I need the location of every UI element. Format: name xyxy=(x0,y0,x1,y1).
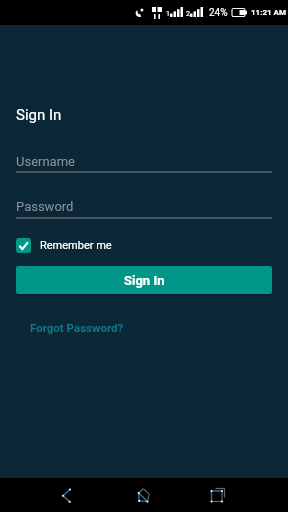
staticText: Username xyxy=(16,154,75,169)
button[interactable] xyxy=(122,478,166,512)
button[interactable]: Sign In xyxy=(16,266,272,294)
button[interactable]: Remember me xyxy=(16,238,112,253)
button[interactable] xyxy=(196,478,240,512)
staticText: 11:21 AM xyxy=(251,8,287,17)
button[interactable]: Forgot Password? xyxy=(30,321,124,334)
staticText: Remember me xyxy=(40,239,112,252)
staticText: Password xyxy=(16,199,74,214)
staticText: 1 xyxy=(166,10,170,18)
staticText: Sign In xyxy=(16,106,62,124)
staticText: 24% xyxy=(209,7,228,19)
staticText: Sign In xyxy=(124,273,165,288)
staticText: 2 xyxy=(186,10,190,18)
button[interactable] xyxy=(44,478,88,512)
